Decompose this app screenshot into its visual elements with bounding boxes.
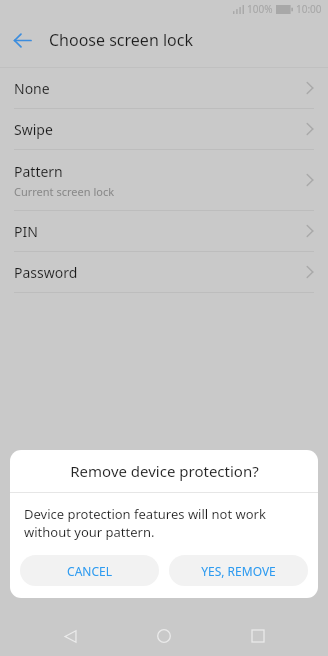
button[interactable]: Pattern bbox=[0, 150, 328, 210]
button[interactable]: Home bbox=[140, 616, 188, 656]
staticText: 100% bbox=[247, 2, 273, 16]
button[interactable]: Back bbox=[0, 18, 44, 62]
staticText: Remove device protection? bbox=[70, 461, 259, 481]
staticText: Device protection features will not work… bbox=[24, 505, 266, 541]
button[interactable]: YES, REMOVE bbox=[169, 555, 308, 586]
staticText: Swipe bbox=[14, 120, 53, 139]
button[interactable]: Back bbox=[46, 616, 94, 656]
button[interactable]: PIN bbox=[0, 211, 328, 251]
staticText: Password bbox=[14, 263, 78, 282]
staticText: YES, REMOVE bbox=[201, 563, 276, 579]
button[interactable]: None bbox=[0, 68, 328, 108]
button[interactable]: Password bbox=[0, 252, 328, 292]
staticText: None bbox=[14, 79, 50, 98]
staticText: Pattern bbox=[14, 162, 63, 181]
button[interactable]: Recent apps bbox=[234, 616, 282, 656]
staticText: 10:00 bbox=[296, 2, 322, 16]
staticText: CANCEL bbox=[67, 563, 112, 579]
button[interactable]: Swipe bbox=[0, 109, 328, 149]
staticText: Current screen lock bbox=[14, 184, 115, 199]
staticText: Choose screen lock bbox=[49, 29, 193, 51]
staticText: PIN bbox=[14, 222, 38, 241]
button[interactable]: CANCEL bbox=[20, 555, 159, 586]
